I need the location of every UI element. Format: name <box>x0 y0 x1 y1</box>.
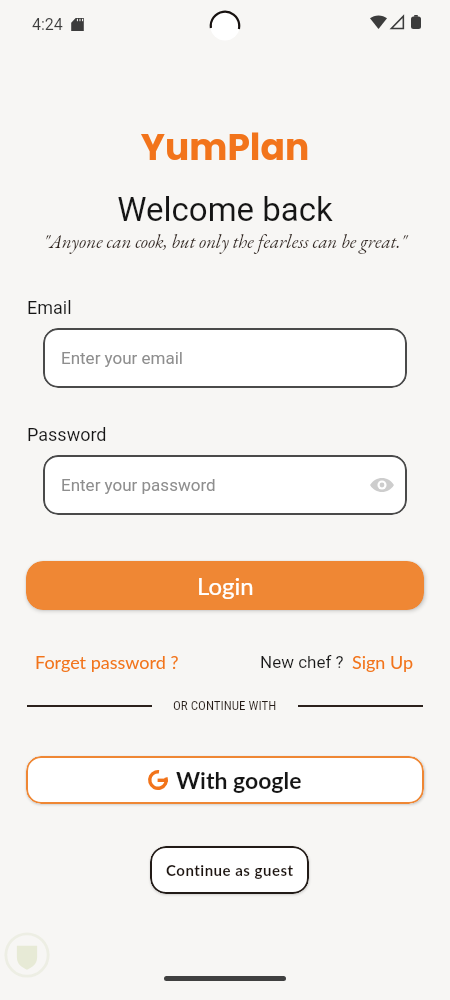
button[interactable]: Enter your password <box>43 455 407 515</box>
button[interactable]: Sign Up <box>352 651 414 673</box>
staticText: With google <box>176 766 302 794</box>
staticText: Login <box>197 571 254 600</box>
staticText: YumPlan <box>0 122 450 172</box>
button[interactable]: Show password <box>367 470 397 500</box>
staticText: "Anyone can cook, but only the fearless … <box>0 229 450 254</box>
button[interactable]: Continue as guest <box>150 846 309 894</box>
staticText: Enter your email <box>61 348 184 368</box>
button[interactable]: Enter your email <box>43 328 407 388</box>
staticText: Password <box>27 424 107 445</box>
button[interactable]: Login <box>26 561 424 610</box>
staticText: Welcome back <box>0 190 450 229</box>
staticText: New chef ? <box>260 652 344 672</box>
button[interactable]: Forget password ? <box>35 651 179 673</box>
staticText: Continue as guest <box>166 861 294 879</box>
staticText: Email <box>27 297 72 318</box>
button[interactable]: With google <box>26 756 424 804</box>
staticText: 4:24 <box>32 15 63 34</box>
staticText: Enter your password <box>61 475 216 495</box>
staticText: OR CONTINUE WITH <box>173 698 277 713</box>
